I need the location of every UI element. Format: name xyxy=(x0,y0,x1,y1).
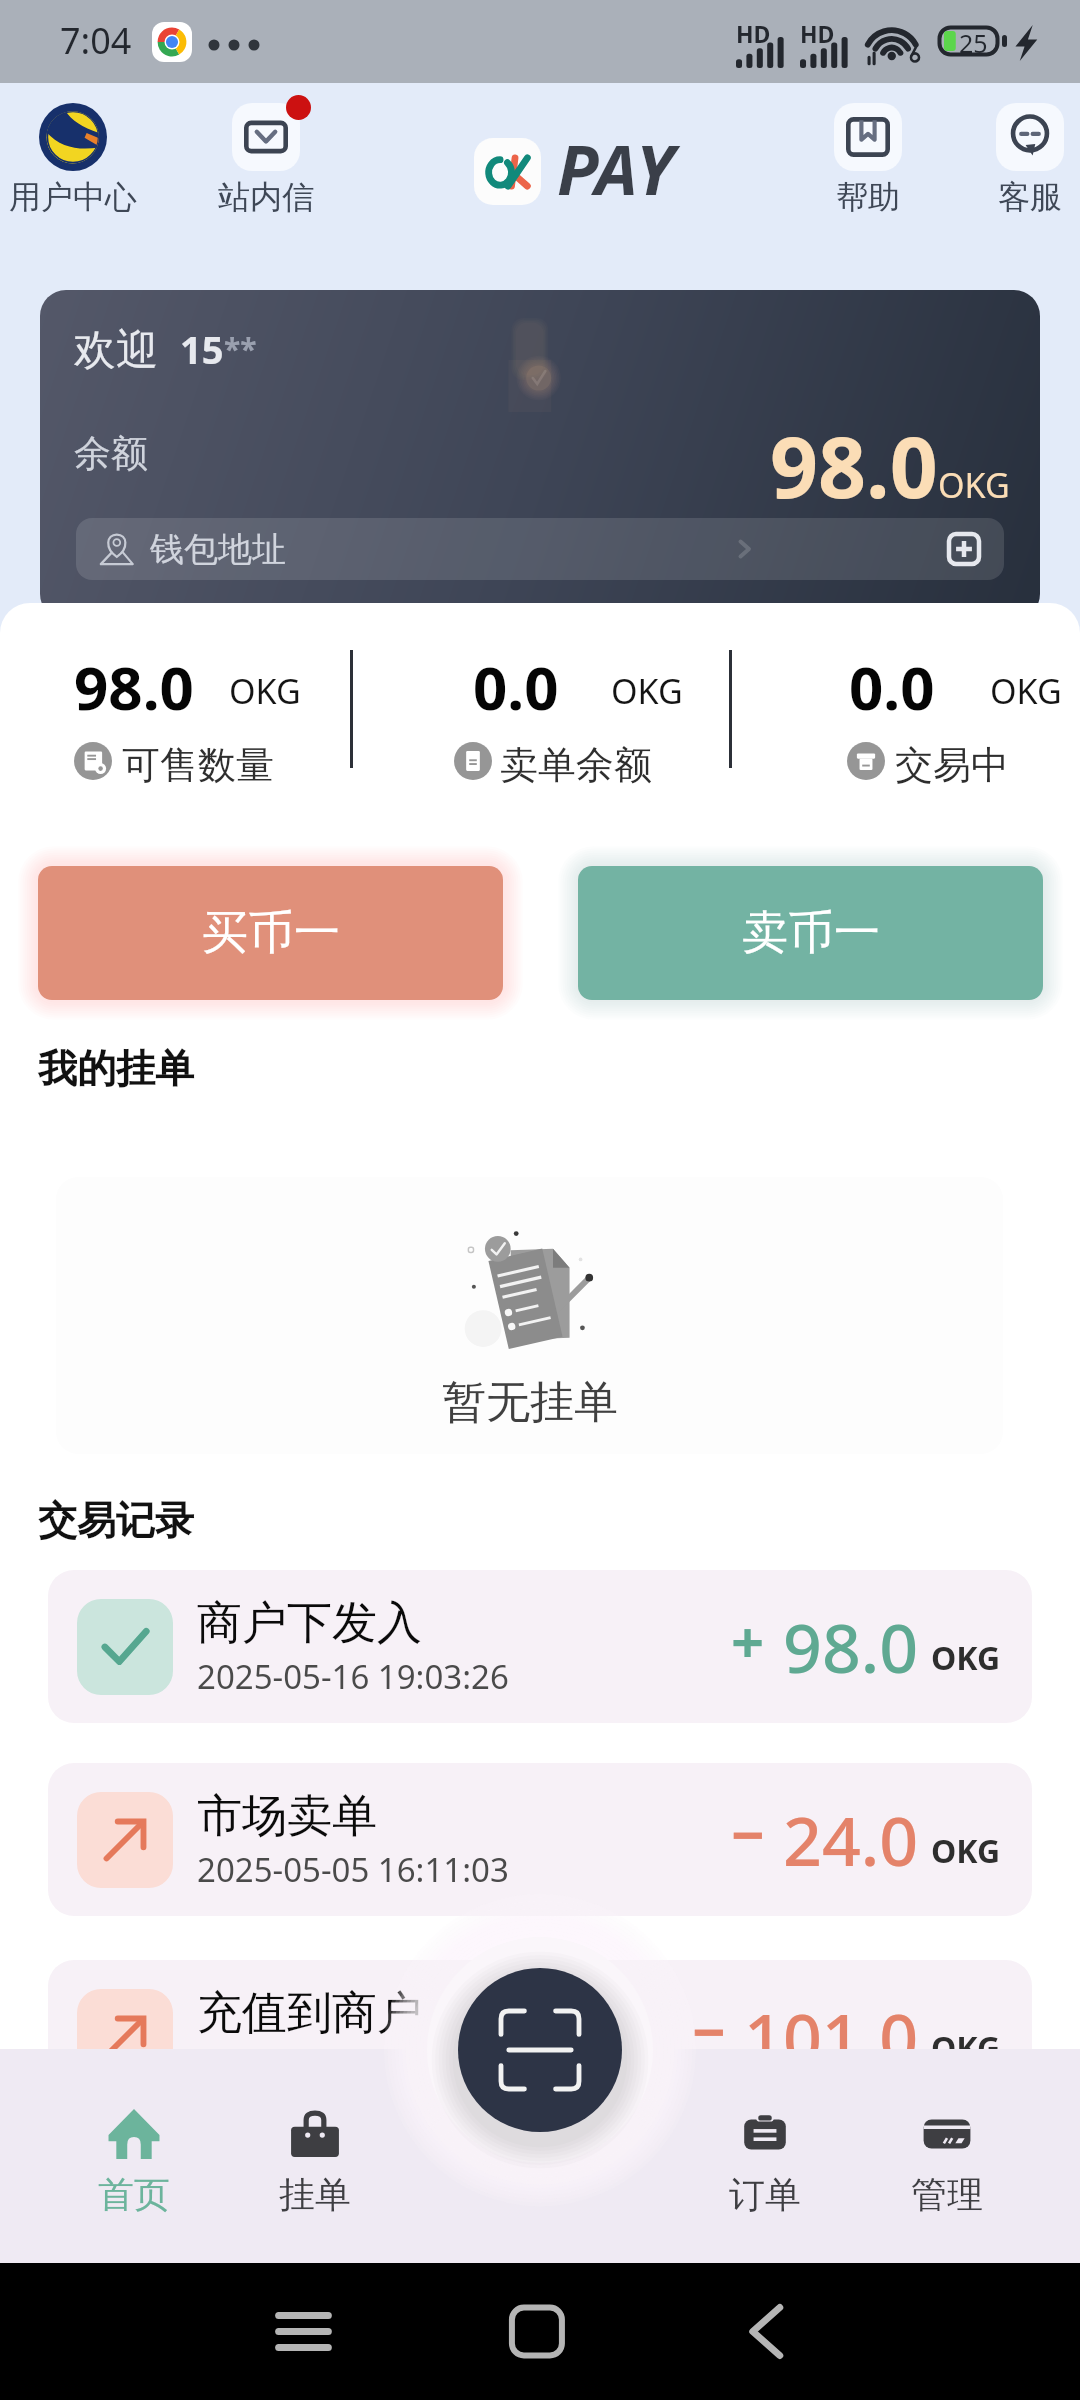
staticText: OKG xyxy=(229,668,301,714)
button[interactable]: 首页 xyxy=(54,2108,214,2234)
staticText: 商户下发入 xyxy=(197,1595,422,1652)
staticText: 订单 xyxy=(729,2172,801,2217)
staticText: 24.0 xyxy=(783,1793,919,1886)
button[interactable]: 客服 xyxy=(965,103,1080,217)
staticText: 挂单 xyxy=(279,2172,351,2217)
staticText: HD xyxy=(800,18,835,49)
staticText: 钱包地址 xyxy=(150,528,286,571)
button[interactable]: 订单 xyxy=(685,2108,845,2234)
button[interactable]: 充值到商户 xyxy=(48,1960,1032,2113)
staticText: 管理 xyxy=(911,2172,983,2217)
staticText: 我的挂单 xyxy=(38,1044,194,1093)
staticText: 2025-05-01 11:00:00 xyxy=(197,2044,509,2089)
button[interactable]: 卖币一 xyxy=(578,866,1043,1000)
button[interactable]: 商户下发入 xyxy=(48,1570,1032,1723)
staticText: 帮助 xyxy=(836,177,900,217)
staticText: 0.0 xyxy=(849,646,935,728)
button[interactable]: 站内信 xyxy=(201,103,331,217)
staticText: OKG xyxy=(931,2026,1001,2070)
button[interactable]: 市场卖单 xyxy=(48,1763,1032,1916)
staticText: OKG xyxy=(931,1636,1001,1680)
staticText: OKG xyxy=(611,668,683,714)
staticText: 0.0 xyxy=(473,646,559,728)
button[interactable]: 买币一 xyxy=(38,866,503,1000)
staticText: 充值到商户 xyxy=(197,1985,422,2042)
staticText: PAY xyxy=(557,122,675,215)
staticText: 卖币一 xyxy=(742,904,880,962)
staticText: 市场卖单 xyxy=(197,1788,377,1845)
staticText: 7:04 xyxy=(60,16,132,65)
staticText: 余额 xyxy=(74,430,148,477)
staticText: OKG xyxy=(938,462,1010,508)
staticText: ** xyxy=(224,328,257,369)
staticText: 暂无挂单 xyxy=(442,1375,618,1430)
staticText: 可售数量 xyxy=(122,741,274,789)
staticText: 98.0 xyxy=(783,1600,919,1693)
staticText: OKG xyxy=(931,1829,1001,1873)
staticText: 欢迎 xyxy=(74,324,158,377)
staticText: 98.0 xyxy=(74,646,194,728)
staticText: 2025-05-05 16:11:03 xyxy=(197,1847,509,1892)
staticText: 客服 xyxy=(998,177,1062,217)
staticText: + xyxy=(731,1601,765,1680)
staticText: HD xyxy=(736,18,771,49)
staticText: 交易中 xyxy=(895,741,1009,789)
staticText: 98.0 xyxy=(770,408,938,522)
button[interactable]: 挂单 xyxy=(235,2108,395,2234)
staticText: − xyxy=(731,1794,765,1873)
button[interactable]: 管理 xyxy=(867,2108,1027,2234)
staticText: 101.0 xyxy=(744,1990,919,2083)
button[interactable]: 钱包地址 xyxy=(76,518,1004,580)
button[interactable]: 帮助 xyxy=(803,103,933,217)
staticText: 交易记录 xyxy=(38,1496,194,1545)
staticText: 用户中心 xyxy=(9,177,137,217)
staticText: 卖单余额 xyxy=(500,741,652,789)
staticText: OKG xyxy=(990,668,1062,714)
button[interactable]: 用户中心 xyxy=(8,103,138,217)
staticText: 15 xyxy=(180,323,224,375)
button[interactable]: Scan QR code xyxy=(458,1968,622,2132)
staticText: 首页 xyxy=(98,2172,170,2217)
staticText: 25 xyxy=(959,26,988,60)
staticText: 买币一 xyxy=(202,904,340,962)
staticText: 2025-05-16 19:03:26 xyxy=(197,1654,509,1699)
staticText: − xyxy=(692,1991,726,2070)
staticText: 站内信 xyxy=(218,177,314,217)
